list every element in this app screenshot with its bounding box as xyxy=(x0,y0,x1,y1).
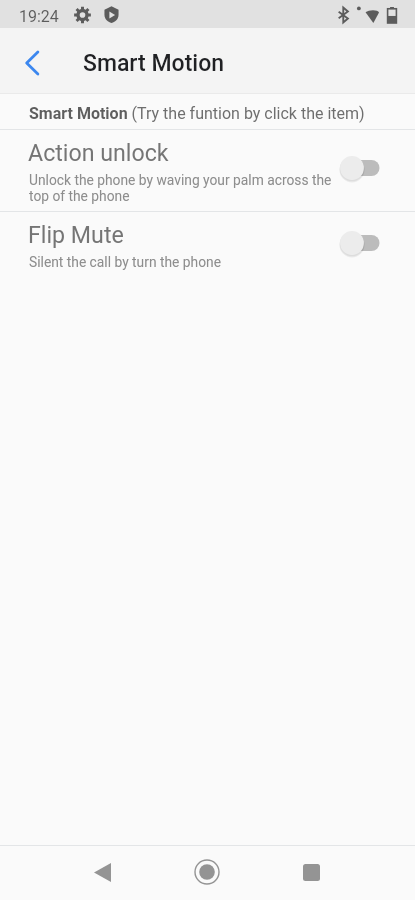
button[interactable]: Toggle off xyxy=(333,227,385,259)
button[interactable]: Home xyxy=(179,845,235,899)
staticText: Flip Mute xyxy=(28,221,124,248)
button[interactable]: Recent apps xyxy=(283,845,339,899)
button[interactable]: Back xyxy=(2,33,62,93)
staticText: Action unlock xyxy=(28,139,169,166)
staticText: Silent the call by turn the phone xyxy=(29,254,221,270)
button[interactable]: Flip Mute xyxy=(0,212,415,278)
button[interactable]: Action unlock xyxy=(0,130,415,211)
button[interactable]: Back xyxy=(74,845,130,899)
staticText: Smart Motion (Try the funtion by click t… xyxy=(29,104,365,123)
button[interactable]: Toggle off xyxy=(333,152,385,184)
staticText: 19:24 xyxy=(19,7,59,26)
staticText: Smart Motion xyxy=(83,50,225,77)
staticText: Unlock the phone by waving your palm acr… xyxy=(29,172,332,205)
